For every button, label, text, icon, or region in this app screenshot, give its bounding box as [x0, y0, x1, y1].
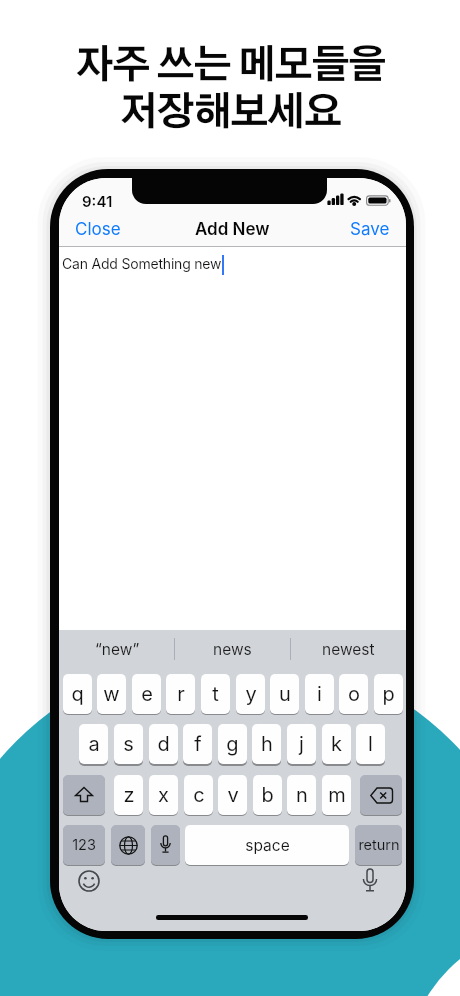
button[interactable]: Save [59, 219, 390, 238]
staticText: d [157, 732, 170, 756]
staticText: m [328, 783, 346, 807]
staticText: h [261, 732, 273, 756]
staticText: return [358, 836, 400, 854]
staticText: p [382, 682, 395, 706]
staticText: j [299, 732, 304, 756]
staticText: s [123, 732, 134, 756]
staticText: w [103, 682, 120, 706]
button[interactable]: n [287, 775, 316, 815]
button[interactable]: space [185, 825, 349, 865]
button[interactable]: h [252, 724, 281, 764]
staticText: i [317, 682, 322, 706]
button[interactable]: e [132, 674, 161, 714]
staticText: n [296, 783, 308, 807]
staticText: newest [322, 640, 375, 659]
button[interactable]: o [339, 674, 368, 714]
staticText: z [123, 783, 135, 807]
button[interactable]: a [79, 724, 108, 764]
staticText: “new” [95, 640, 140, 659]
button[interactable] [151, 825, 180, 865]
button[interactable]: k [322, 724, 351, 764]
button[interactable]: i [305, 674, 334, 714]
button[interactable]: r [166, 674, 195, 714]
button[interactable]: v [218, 775, 247, 815]
button[interactable]: w [97, 674, 126, 714]
button[interactable] [63, 775, 105, 815]
staticText: Add New [195, 219, 270, 238]
staticText: f [194, 732, 202, 756]
button[interactable]: l [356, 724, 385, 764]
button[interactable]: newest [290, 630, 406, 668]
staticText: Close [75, 219, 121, 238]
button[interactable]: m [322, 775, 351, 815]
staticText: Save [350, 219, 390, 238]
staticText: a [88, 732, 100, 756]
staticText: q [71, 682, 84, 706]
staticText: 9:41 [82, 192, 113, 210]
button[interactable]: j [287, 724, 316, 764]
staticText: o [348, 682, 360, 706]
staticText: e [141, 682, 153, 706]
staticText: g [226, 732, 239, 756]
button[interactable]: 123 [63, 825, 105, 865]
button[interactable]: return [355, 825, 402, 865]
button[interactable]: y [236, 674, 265, 714]
staticText: v [227, 783, 239, 807]
staticText: r [177, 682, 185, 706]
button[interactable] [360, 775, 402, 815]
button[interactable]: c [184, 775, 213, 815]
staticText: c [193, 783, 205, 807]
button[interactable]: Close [75, 219, 121, 238]
button[interactable]: d [149, 724, 178, 764]
button[interactable]: z [114, 775, 143, 815]
button[interactable]: f [183, 724, 212, 764]
button[interactable]: p [374, 674, 403, 714]
button[interactable]: “new” [59, 630, 175, 668]
button[interactable]: g [218, 724, 247, 764]
staticText: x [158, 783, 169, 807]
button[interactable]: q [63, 674, 92, 714]
staticText: l [368, 732, 373, 756]
staticText: Can Add Something new [62, 255, 222, 272]
staticText: b [261, 783, 274, 807]
button[interactable]: t [201, 674, 230, 714]
button[interactable]: u [270, 674, 299, 714]
button[interactable]: s [114, 724, 143, 764]
button[interactable]: x [149, 775, 178, 815]
staticText: u [279, 682, 291, 706]
button[interactable]: b [253, 775, 282, 815]
button[interactable] [111, 825, 145, 865]
button[interactable]: news [175, 630, 290, 668]
staticText: space [245, 836, 290, 855]
staticText: 자주 쓰는 메모들을 저장해보세요 [0, 47, 460, 133]
staticText: y [245, 682, 257, 706]
staticText: news [213, 640, 252, 659]
staticText: k [331, 732, 342, 756]
staticText: t [212, 682, 219, 706]
staticText: 123 [72, 836, 96, 854]
